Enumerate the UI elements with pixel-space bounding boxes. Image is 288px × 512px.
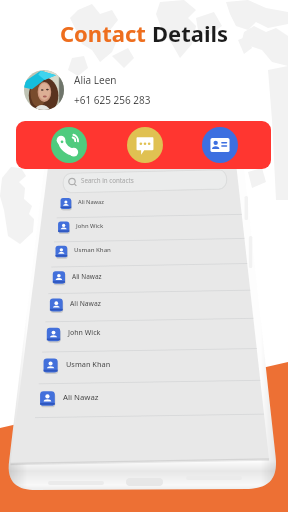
button[interactable]: John Wick	[76, 222, 104, 230]
button[interactable]: Ali Nawaz	[63, 392, 99, 402]
button[interactable]: Ali Nawaz	[70, 299, 101, 308]
button[interactable]: Message	[127, 127, 163, 163]
button[interactable]: Ali Nawaz	[78, 198, 104, 206]
staticText: Usman Khan	[74, 246, 111, 254]
button[interactable]: Ali Nawaz	[72, 272, 102, 281]
staticText: Ali Nawaz	[72, 272, 102, 281]
staticText: Ali Nawaz	[63, 392, 99, 402]
staticText: Ali Nawaz	[78, 198, 104, 206]
staticText: John Wick	[68, 328, 101, 337]
staticText: Contact	[60, 18, 152, 48]
staticText: Search in contacts	[81, 176, 134, 184]
button[interactable]: John Wick	[68, 328, 101, 337]
button[interactable]: Usman Khan	[66, 359, 111, 369]
staticText: Alia Leen	[74, 73, 117, 87]
button[interactable]: Alia Leen	[24, 70, 151, 110]
staticText: John Wick	[76, 222, 104, 230]
button[interactable]: Call	[51, 127, 87, 163]
staticText: Details	[152, 18, 229, 48]
button[interactable]: Search in contacts	[81, 176, 134, 184]
staticText: Ali Nawaz	[70, 299, 101, 308]
button[interactable]: Contact card	[202, 127, 238, 163]
staticText: Usman Khan	[66, 359, 111, 369]
button[interactable]: Usman Khan	[74, 246, 111, 254]
staticText: +61 625 256 283	[74, 93, 151, 107]
